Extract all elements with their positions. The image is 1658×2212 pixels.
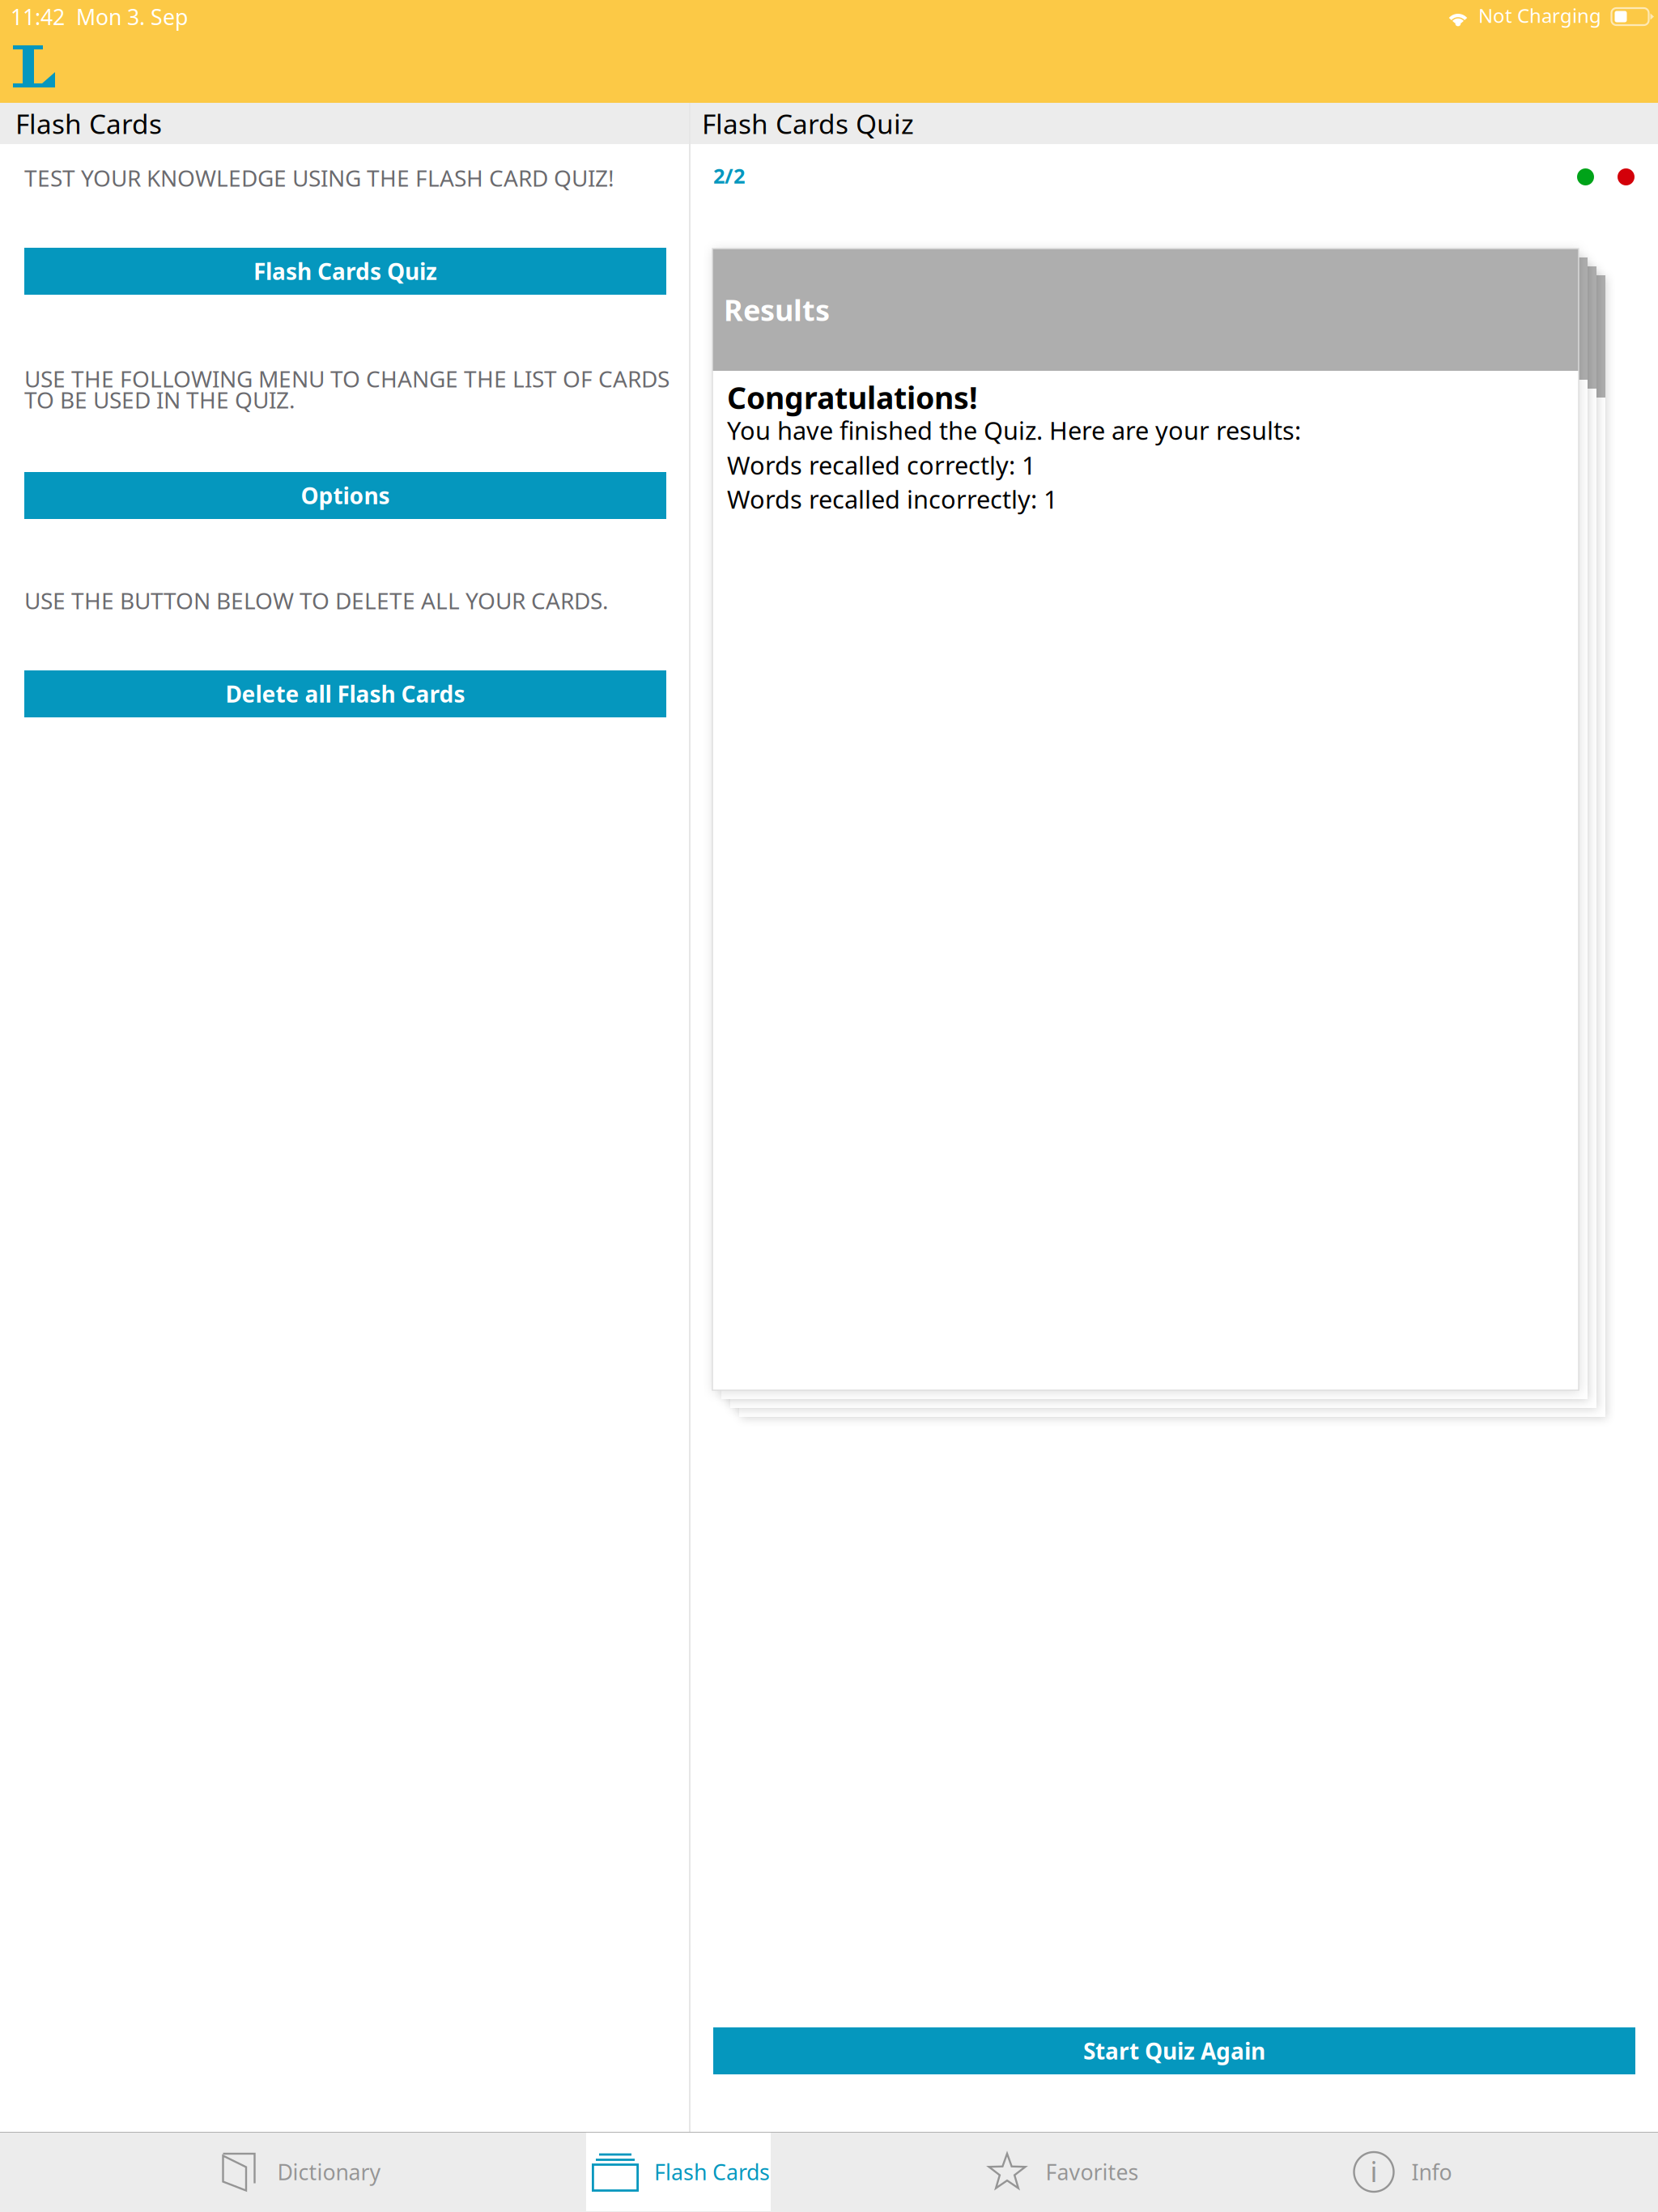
button[interactable]: i bbox=[1217, 2133, 1589, 2211]
staticText: Flash Cards bbox=[15, 106, 162, 141]
button[interactable]: Dictionary bbox=[115, 2133, 487, 2211]
staticText: 2/2 bbox=[713, 162, 745, 189]
staticText: Words recalled correctly: 1 bbox=[727, 449, 1036, 482]
staticText: Dictionary bbox=[277, 2158, 381, 2186]
staticText: Info bbox=[1411, 2158, 1452, 2186]
staticText: 11:42 bbox=[11, 2, 65, 31]
staticText: TO BE USED IN THE QUIZ. bbox=[24, 385, 295, 415]
staticText: Favorites bbox=[1046, 2158, 1139, 2186]
button[interactable]: Flash Cards Quiz bbox=[24, 248, 666, 295]
staticText: Start Quiz Again bbox=[1083, 2036, 1265, 2066]
button[interactable]: Delete all Flash Cards bbox=[24, 670, 666, 717]
button[interactable]: Start Quiz Again bbox=[713, 2027, 1635, 2074]
staticText: USE THE BUTTON BELOW TO DELETE ALL YOUR … bbox=[24, 585, 609, 616]
button[interactable]: Favorites bbox=[877, 2133, 1249, 2211]
staticText: Flash Cards Quiz bbox=[253, 256, 437, 286]
staticText: Words recalled incorrectly: 1 bbox=[727, 483, 1058, 516]
button[interactable]: Flash Cards bbox=[589, 2133, 773, 2211]
button[interactable]: Options bbox=[24, 472, 666, 519]
staticText: Flash Cards bbox=[654, 2158, 770, 2186]
staticText: Mon 3. Sep bbox=[76, 2, 188, 31]
staticText: USE THE FOLLOWING MENU TO CHANGE THE LIS… bbox=[24, 364, 670, 394]
staticText: Flash Cards Quiz bbox=[702, 106, 914, 141]
staticText: Results bbox=[724, 290, 830, 329]
staticText: Not Charging bbox=[1478, 2, 1601, 28]
staticText: Options bbox=[301, 480, 390, 511]
staticText: Congratulations! bbox=[727, 377, 978, 417]
staticText: i bbox=[1370, 2152, 1377, 2190]
staticText: Delete all Flash Cards bbox=[225, 679, 465, 709]
staticText: TEST YOUR KNOWLEDGE USING THE FLASH CARD… bbox=[24, 163, 614, 193]
staticText: You have finished the Quiz. Here are you… bbox=[727, 414, 1301, 447]
